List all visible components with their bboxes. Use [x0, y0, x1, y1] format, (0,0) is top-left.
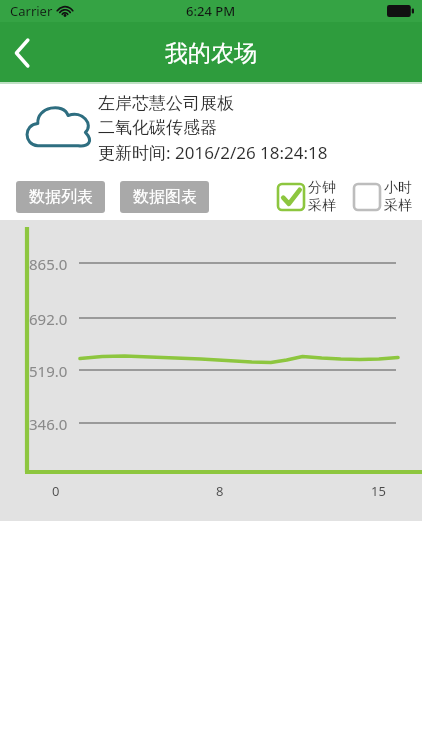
button[interactable]: 数据图表	[120, 181, 209, 213]
staticText: 6:24 PM	[186, 2, 236, 20]
staticText: 左岸芯慧公司展板	[98, 93, 234, 114]
staticText: 865.0	[29, 254, 68, 274]
button[interactable]: 分钟	[276, 177, 336, 217]
staticText: 更新时间: 2016/2/26 18:24:18	[98, 141, 328, 164]
staticText: 二氧化碳传感器	[98, 117, 217, 138]
staticText: 519.0	[29, 361, 68, 381]
staticText: 采样	[308, 197, 336, 215]
staticText: 分钟	[308, 179, 336, 197]
staticText: 小时	[384, 179, 412, 197]
staticText: 346.0	[29, 414, 68, 434]
staticText: 0	[52, 482, 60, 500]
staticText: 数据列表	[29, 187, 93, 207]
staticText: 我的农场	[165, 39, 257, 68]
staticText: 8	[216, 482, 224, 500]
staticText: Carrier	[10, 2, 53, 20]
staticText: 15	[371, 482, 386, 500]
button[interactable]: 小时	[352, 177, 412, 217]
staticText: 692.0	[29, 309, 68, 329]
button[interactable]: 数据列表	[16, 181, 105, 213]
staticText: 采样	[384, 197, 412, 215]
staticText: 数据图表	[133, 187, 197, 207]
button[interactable]: Back	[0, 22, 52, 84]
